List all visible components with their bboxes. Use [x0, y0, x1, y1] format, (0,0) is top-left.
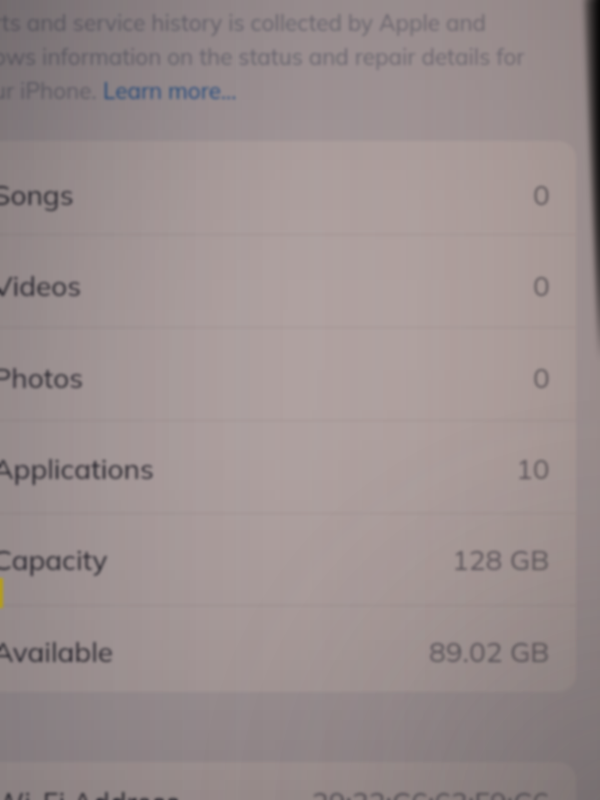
staticText: Videos — [0, 268, 82, 303]
staticText: Available — [0, 634, 114, 669]
staticText: 10 — [516, 451, 550, 486]
button[interactable]: Photos — [0, 328, 576, 421]
staticText: 0 — [533, 268, 550, 303]
staticText: 29:32:C6:63:F9:C6 — [312, 784, 550, 800]
button[interactable]: Available — [0, 606, 576, 692]
button[interactable]: Capacity — [0, 513, 576, 606]
staticText: 0 — [533, 360, 550, 395]
staticText: 0 — [533, 177, 550, 212]
staticText: 89.02 GB — [429, 634, 550, 669]
staticText: Learn more... — [103, 76, 237, 104]
button[interactable]: Songs — [0, 141, 576, 235]
button[interactable]: Applications — [0, 421, 576, 514]
staticText: Capacity — [0, 542, 108, 577]
staticText: ows information on the status and repair… — [0, 42, 525, 70]
button[interactable]: Wi-Fi Address — [0, 762, 576, 800]
staticText: Photos — [0, 360, 84, 395]
staticText: Songs — [0, 177, 74, 212]
staticText: Wi-Fi Address — [0, 784, 180, 800]
button[interactable]: Videos — [0, 235, 576, 328]
staticText: Applications — [0, 451, 154, 486]
staticText: rts and service history is collected by … — [0, 8, 487, 36]
staticText: ur iPhone. — [0, 76, 103, 104]
staticText: 128 GB — [452, 542, 550, 577]
